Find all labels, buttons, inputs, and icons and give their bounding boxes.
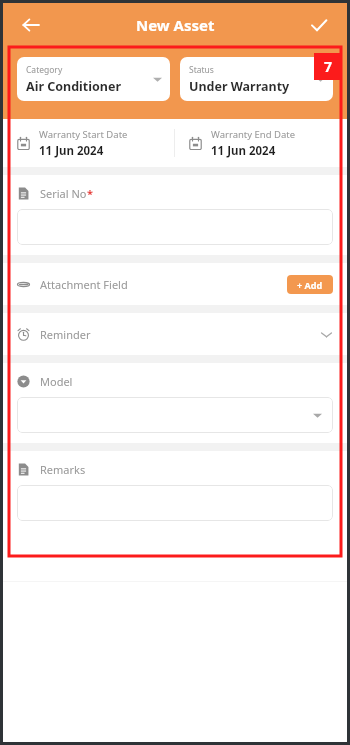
button[interactable]: Status	[180, 57, 333, 101]
staticText: Status	[189, 64, 214, 76]
staticText: Warranty Start Date	[39, 128, 128, 141]
staticText: 7	[324, 57, 333, 76]
staticText: Under Warranty	[189, 78, 290, 95]
button[interactable]: Warranty Start Date	[17, 128, 174, 159]
button[interactable]: Category	[17, 57, 170, 101]
button[interactable]: + Add	[287, 275, 333, 294]
staticText: Reminder	[40, 327, 91, 342]
button[interactable]: Attachment Field	[17, 263, 333, 305]
staticText: Air Conditioner	[26, 78, 121, 95]
button[interactable]	[17, 209, 333, 245]
button[interactable]: Warranty End Date	[189, 128, 347, 159]
staticText: New Asset	[136, 15, 215, 35]
staticText: Attachment Field	[40, 277, 128, 292]
staticText: 11 Jun 2024	[39, 143, 104, 159]
button[interactable]	[17, 397, 333, 433]
staticText: Warranty End Date	[211, 128, 296, 141]
staticText: Category	[26, 64, 63, 76]
button[interactable]	[17, 485, 333, 521]
staticText: *	[87, 186, 93, 201]
button[interactable]: Save	[301, 7, 337, 43]
staticText: Remarks	[40, 462, 86, 477]
staticText: Serial No	[40, 186, 87, 201]
button[interactable]: Reminder	[17, 313, 333, 355]
button[interactable]: Back	[13, 7, 49, 43]
staticText: + Add	[297, 279, 323, 291]
staticText: Model	[40, 374, 73, 389]
staticText: 11 Jun 2024	[211, 143, 276, 159]
